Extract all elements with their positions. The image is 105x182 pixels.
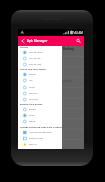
- button[interactable]: uninstall: [18, 97, 62, 102]
- staticText: share: [29, 86, 35, 89]
- button[interactable]: Search: [75, 36, 82, 46]
- button[interactable]: sort by name: [18, 50, 62, 55]
- button[interactable]: app info: [18, 91, 62, 96]
- button[interactable]: run: [18, 78, 62, 83]
- staticText: Install apk click option: [20, 68, 46, 71]
- staticText: Show all Apps: [29, 137, 44, 140]
- staticText: gmplus: [63, 79, 73, 83]
- button[interactable]: sort by time: [18, 62, 62, 67]
- button[interactable]: Show all Apps: [18, 136, 62, 141]
- staticText: Rate Us: [29, 143, 37, 146]
- staticText: Backup click option: [20, 103, 43, 106]
- staticText: delete: [29, 120, 36, 123]
- staticText: Change Extracted Apps Path Location: [20, 126, 63, 129]
- button[interactable]: share: [18, 85, 62, 90]
- staticText: Sort By :: [20, 46, 30, 49]
- button[interactable]: Rate Us: [18, 142, 62, 147]
- button[interactable]: Auto extract new apps: [18, 130, 62, 135]
- button[interactable]: extract: [18, 72, 62, 77]
- button[interactable]: Back: [20, 36, 26, 46]
- button[interactable]: delete: [18, 119, 62, 124]
- staticText: share: [29, 114, 35, 117]
- staticText: Backup: [63, 47, 75, 51]
- staticText: app info: [29, 92, 38, 95]
- staticText: Auto extract new apps: [29, 131, 52, 134]
- staticText: extract: [29, 108, 37, 111]
- staticText: sort by name: [29, 51, 43, 54]
- staticText: uninstall: [29, 98, 38, 101]
- button[interactable]: share: [18, 113, 62, 118]
- staticText: 7:44 AM: [72, 31, 83, 35]
- staticText: sort by size: [29, 57, 41, 60]
- button[interactable]: sort by size: [18, 56, 62, 61]
- staticText: sort by time: [29, 63, 42, 66]
- staticText: extract: [29, 73, 37, 76]
- staticText: run: [29, 79, 33, 82]
- button[interactable]: extract: [18, 107, 62, 112]
- staticText: Apk Manager: [27, 39, 48, 43]
